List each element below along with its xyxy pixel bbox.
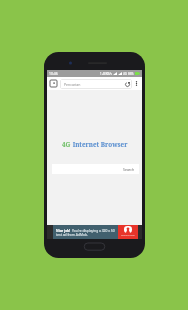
staticText: 86% bbox=[128, 72, 134, 76]
staticText: Nice job! bbox=[56, 228, 72, 232]
staticText: 1.48KB/s bbox=[100, 72, 112, 76]
staticText: test ad from AdMob. bbox=[56, 232, 88, 236]
button[interactable]: More options bbox=[132, 79, 141, 88]
staticText: Pencarian bbox=[64, 82, 81, 87]
staticText: Search bbox=[123, 167, 135, 172]
staticText: Internet Browser bbox=[71, 140, 128, 149]
button[interactable]: Tabs bbox=[49, 79, 58, 88]
staticText: 4G bbox=[62, 140, 71, 149]
button[interactable]: Pencarian bbox=[60, 79, 132, 89]
button[interactable]: Search bbox=[52, 164, 139, 174]
staticText: powered by Google bbox=[121, 234, 135, 236]
button[interactable]: Refresh bbox=[123, 80, 131, 88]
staticText: 4G bbox=[123, 72, 127, 76]
button[interactable]: Nice job! bbox=[53, 225, 138, 239]
staticText: You're displaying a 320 x 50 bbox=[72, 228, 115, 232]
staticText: 10:46 bbox=[49, 71, 58, 76]
